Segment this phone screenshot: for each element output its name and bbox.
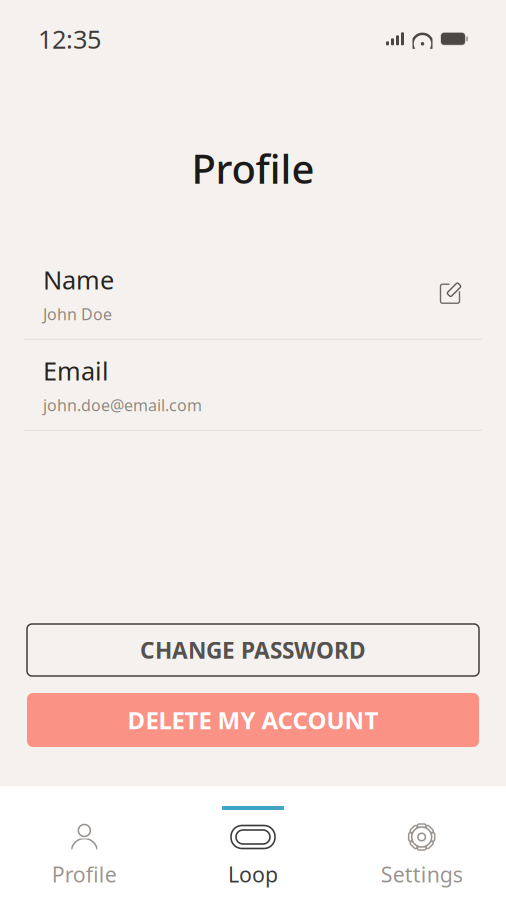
button[interactable]: Name — [0, 249, 506, 339]
button[interactable]: Profile — [0, 786, 169, 900]
staticText: DELETE MY ACCOUNT — [127, 704, 378, 736]
staticText: 12:35 — [38, 22, 101, 56]
staticText: Settings — [381, 860, 463, 888]
button[interactable]: CHANGE PASSWORD — [27, 624, 479, 676]
staticText: Loop — [228, 860, 278, 888]
staticText: CHANGE PASSWORD — [140, 635, 366, 665]
staticText: Profile — [191, 142, 314, 195]
button[interactable]: Loop — [169, 786, 337, 900]
staticText: Profile — [52, 860, 117, 888]
staticText: john.doe@email.com — [43, 394, 202, 416]
staticText: John Doe — [43, 303, 112, 325]
button[interactable]: Email — [0, 340, 506, 430]
button[interactable]: Settings — [337, 786, 506, 900]
staticText: Name — [43, 263, 114, 296]
button[interactable]: DELETE MY ACCOUNT — [27, 693, 479, 747]
staticText: Email — [43, 354, 109, 387]
